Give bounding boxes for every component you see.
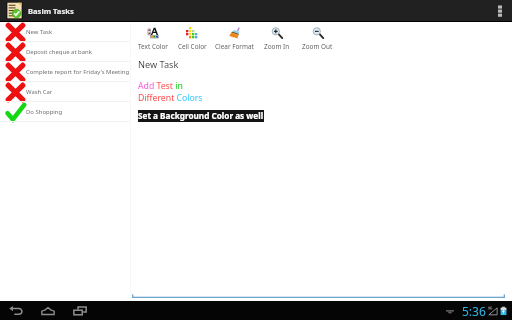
staticText: Cell Color (178, 42, 207, 51)
button[interactable]: Back (6, 301, 25, 320)
staticText: New Task (26, 28, 53, 36)
button[interactable]: Zoom In (257, 27, 297, 51)
staticText: Do Shopping (26, 108, 63, 116)
staticText: Zoom In (264, 42, 290, 51)
staticText: Zoom Out (302, 42, 333, 51)
staticText: 5:36 (462, 303, 486, 319)
button[interactable]: Wash Car (0, 82, 130, 102)
button[interactable]: Home (38, 301, 57, 320)
staticText: Basim Tasks (28, 6, 74, 16)
staticText: Add Test in Different Colors (138, 80, 203, 103)
button[interactable]: Do Shopping (0, 102, 130, 122)
staticText: Complete report for Friday's Meeting (26, 68, 130, 76)
button[interactable]: New Task (0, 22, 130, 42)
staticText: Deposit cheque at bank (26, 48, 92, 56)
button[interactable]: Cell Color (172, 27, 212, 51)
staticText: Text Color (138, 42, 168, 51)
staticText: Clear Format (215, 42, 254, 51)
button[interactable]: Text Color (134, 27, 172, 51)
button[interactable]: Zoom Out (297, 27, 338, 51)
staticText: Wash Car (26, 88, 53, 96)
staticText: Set a Background Color as well (138, 110, 264, 121)
button[interactable]: More options (487, 0, 512, 21)
button[interactable]: Complete report for Friday's Meeting (0, 62, 130, 82)
staticText: New Task (138, 58, 179, 71)
button[interactable]: Deposit cheque at bank (0, 42, 130, 62)
button[interactable]: Clear Format (212, 27, 257, 51)
button[interactable]: Recents (70, 301, 89, 320)
